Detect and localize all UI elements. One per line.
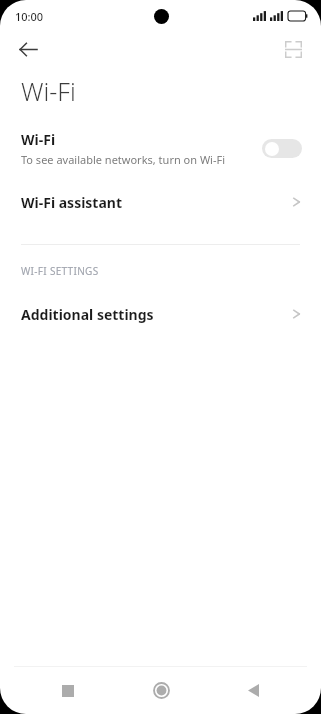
button[interactable]: Home bbox=[137, 667, 185, 714]
button[interactable]: Wi-Fi bbox=[0, 122, 321, 174]
staticText: Wi-Fi bbox=[21, 130, 56, 149]
staticText: 10:00 bbox=[15, 9, 44, 24]
button[interactable]: Back bbox=[11, 32, 45, 66]
staticText: WI-FI SETTINGS bbox=[21, 264, 99, 278]
button[interactable]: Wi-Fi assistant bbox=[0, 182, 321, 222]
staticText: Wi-Fi bbox=[21, 74, 76, 108]
staticText: To see available networks, turn on Wi-Fi bbox=[21, 152, 226, 167]
button[interactable]: Back bbox=[229, 667, 277, 714]
staticText: Additional settings bbox=[21, 305, 292, 324]
button[interactable]: Scan QR code bbox=[276, 32, 310, 66]
button[interactable]: Additional settings bbox=[0, 294, 321, 334]
button[interactable]: Recent apps bbox=[44, 667, 92, 714]
button[interactable]: Wi-Fi toggle, off bbox=[262, 139, 302, 158]
staticText: Wi-Fi assistant bbox=[21, 193, 292, 212]
